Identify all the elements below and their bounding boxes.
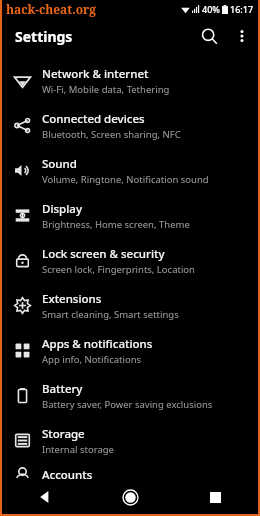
staticText: Sound <box>42 156 77 172</box>
staticText: Apps & notifications <box>42 336 153 352</box>
staticText: Connected devices <box>42 111 145 127</box>
button[interactable]: Extensions <box>2 283 258 328</box>
button[interactable]: Storage <box>2 418 258 463</box>
staticText: Internal storage <box>42 443 114 456</box>
staticText: Storage <box>42 426 85 442</box>
button[interactable]: Sound <box>2 148 258 193</box>
button[interactable]: Recent apps <box>173 480 258 514</box>
button[interactable]: Display <box>2 193 258 238</box>
staticText: Extensions <box>42 291 102 307</box>
button[interactable]: Search <box>192 19 226 53</box>
button[interactable]: Connected devices <box>2 103 258 148</box>
button[interactable]: More options <box>226 20 258 52</box>
button[interactable]: Apps & notifications <box>2 328 258 373</box>
staticText: 16:17 <box>230 3 254 15</box>
staticText: Bluetooth, Screen sharing, NFC <box>42 128 181 141</box>
staticText: Screen lock, Fingerprints, Location <box>42 263 195 276</box>
staticText: Wi-Fi, Mobile data, Tethering <box>42 83 170 96</box>
button[interactable]: Network & internet <box>2 58 258 103</box>
button[interactable]: Battery <box>2 373 258 418</box>
button[interactable]: Home <box>88 480 173 514</box>
button[interactable]: Back <box>2 480 88 514</box>
staticText: Settings <box>15 27 73 46</box>
staticText: hack-cheat.org <box>6 1 97 17</box>
button[interactable]: Lock screen & security <box>2 238 258 283</box>
staticText: 40% <box>202 3 220 15</box>
staticText: Display <box>42 201 82 217</box>
staticText: Battery <box>42 381 83 397</box>
staticText: Volume, Ringtone, Notification sound <box>42 173 209 186</box>
staticText: Accounts <box>42 467 93 483</box>
staticText: Battery saver, Power saving exclusions <box>42 398 213 411</box>
staticText: Smart cleaning, Smart settings <box>42 308 179 321</box>
staticText: Lock screen & security <box>42 246 165 262</box>
staticText: App info, Notifications <box>42 353 142 366</box>
staticText: Brightness, Home screen, Theme <box>42 218 190 231</box>
button[interactable]: Accounts <box>2 463 258 486</box>
staticText: Network & internet <box>42 66 149 82</box>
